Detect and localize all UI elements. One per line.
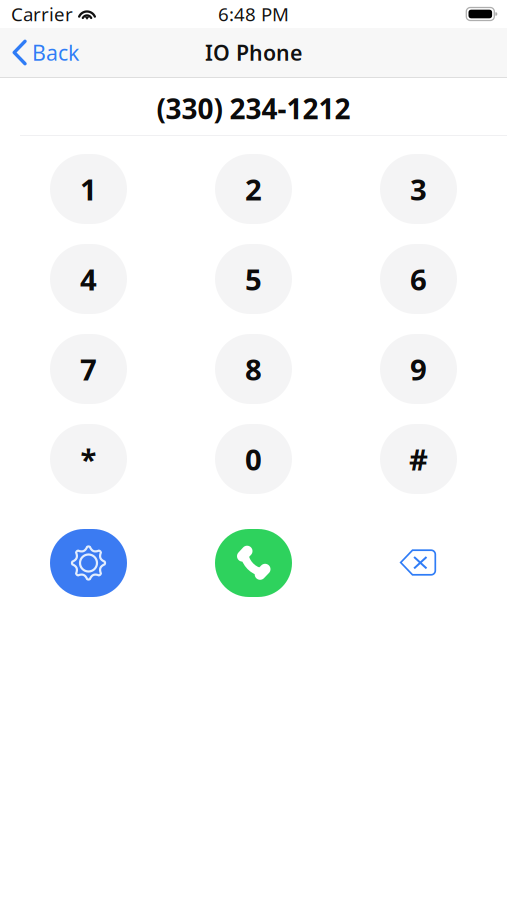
button[interactable]: 8 xyxy=(215,334,292,404)
button[interactable]: * xyxy=(50,424,127,494)
staticText: 4 xyxy=(80,259,97,298)
staticText: (330) 234-1212 xyxy=(156,90,350,127)
staticText: 0 xyxy=(245,439,262,478)
staticText: * xyxy=(80,439,96,478)
staticText: Carrier xyxy=(11,2,73,26)
button[interactable]: 6 xyxy=(380,244,457,314)
button[interactable]: # xyxy=(380,424,457,494)
staticText: 6 xyxy=(410,259,427,298)
staticText: IO Phone xyxy=(205,38,302,67)
button[interactable]: Call xyxy=(215,529,292,597)
staticText: 2 xyxy=(245,169,262,208)
staticText: 3 xyxy=(410,169,427,208)
staticText: Back xyxy=(32,38,79,67)
staticText: 5 xyxy=(245,259,262,298)
staticText: # xyxy=(409,439,428,478)
button[interactable]: 0 xyxy=(215,424,292,494)
button[interactable]: 5 xyxy=(215,244,292,314)
staticText: 6:48 PM xyxy=(218,2,289,26)
button[interactable]: Back xyxy=(0,28,112,77)
button[interactable]: 1 xyxy=(50,154,127,224)
button[interactable]: Settings xyxy=(50,529,127,597)
button[interactable]: 2 xyxy=(215,154,292,224)
staticText: 7 xyxy=(80,349,97,388)
button[interactable]: 7 xyxy=(50,334,127,404)
button[interactable]: Delete xyxy=(380,529,457,597)
button[interactable]: 3 xyxy=(380,154,457,224)
button[interactable]: 9 xyxy=(380,334,457,404)
button[interactable]: 4 xyxy=(50,244,127,314)
staticText: 8 xyxy=(245,349,262,388)
staticText: 1 xyxy=(80,169,97,208)
staticText: 9 xyxy=(410,349,427,388)
